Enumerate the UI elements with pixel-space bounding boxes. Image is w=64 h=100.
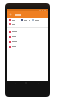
button[interactable] <box>7 39 48 44</box>
button[interactable] <box>7 34 48 39</box>
button[interactable] <box>7 29 48 34</box>
button[interactable]: Add <box>9 13 12 16</box>
button[interactable] <box>7 44 48 49</box>
button[interactable] <box>7 22 48 26</box>
button[interactable] <box>7 18 48 22</box>
